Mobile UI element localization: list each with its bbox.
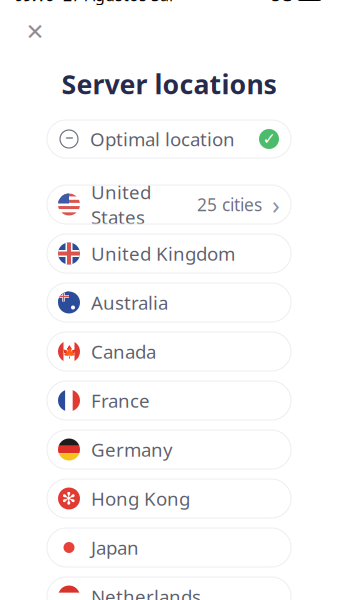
staticText: Germany	[91, 437, 173, 462]
button[interactable]: ✻	[47, 479, 291, 518]
staticText: Optimal location	[90, 127, 235, 151]
button[interactable]: Optimal location	[47, 120, 291, 158]
staticText: France	[91, 388, 150, 413]
staticText: 🍁	[61, 345, 76, 358]
staticText: United Kingdom	[91, 241, 235, 266]
button[interactable]: France	[47, 381, 291, 420]
button[interactable]: Netherlands	[47, 577, 291, 600]
staticText: Australia	[91, 290, 168, 315]
staticText: Netherlands	[91, 584, 201, 600]
staticText: Canada	[91, 339, 156, 364]
staticText: ✓	[262, 130, 275, 148]
button[interactable]: Japan	[47, 528, 291, 567]
button[interactable]: Australia	[47, 283, 291, 322]
button[interactable]: Close	[18, 15, 52, 49]
staticText: 3G	[271, 0, 292, 6]
staticText: ✻	[61, 489, 76, 508]
button[interactable]: United Kingdom	[47, 234, 291, 273]
staticText: ›	[272, 188, 280, 221]
staticText: 86%	[299, 0, 320, 2]
button[interactable]: United States	[47, 185, 291, 224]
staticText: Japan	[91, 535, 139, 560]
staticText: 27 Ağustos Sal	[63, 0, 173, 6]
staticText: 25 cities	[197, 193, 262, 216]
staticText: Server locations	[61, 66, 276, 102]
staticText: Hong Kong	[91, 486, 190, 511]
button[interactable]: 🍁	[47, 332, 291, 371]
staticText: ✕	[25, 19, 44, 45]
button[interactable]: Germany	[47, 430, 291, 469]
staticText: United States	[91, 180, 151, 229]
staticText: 09:16	[14, 0, 54, 6]
